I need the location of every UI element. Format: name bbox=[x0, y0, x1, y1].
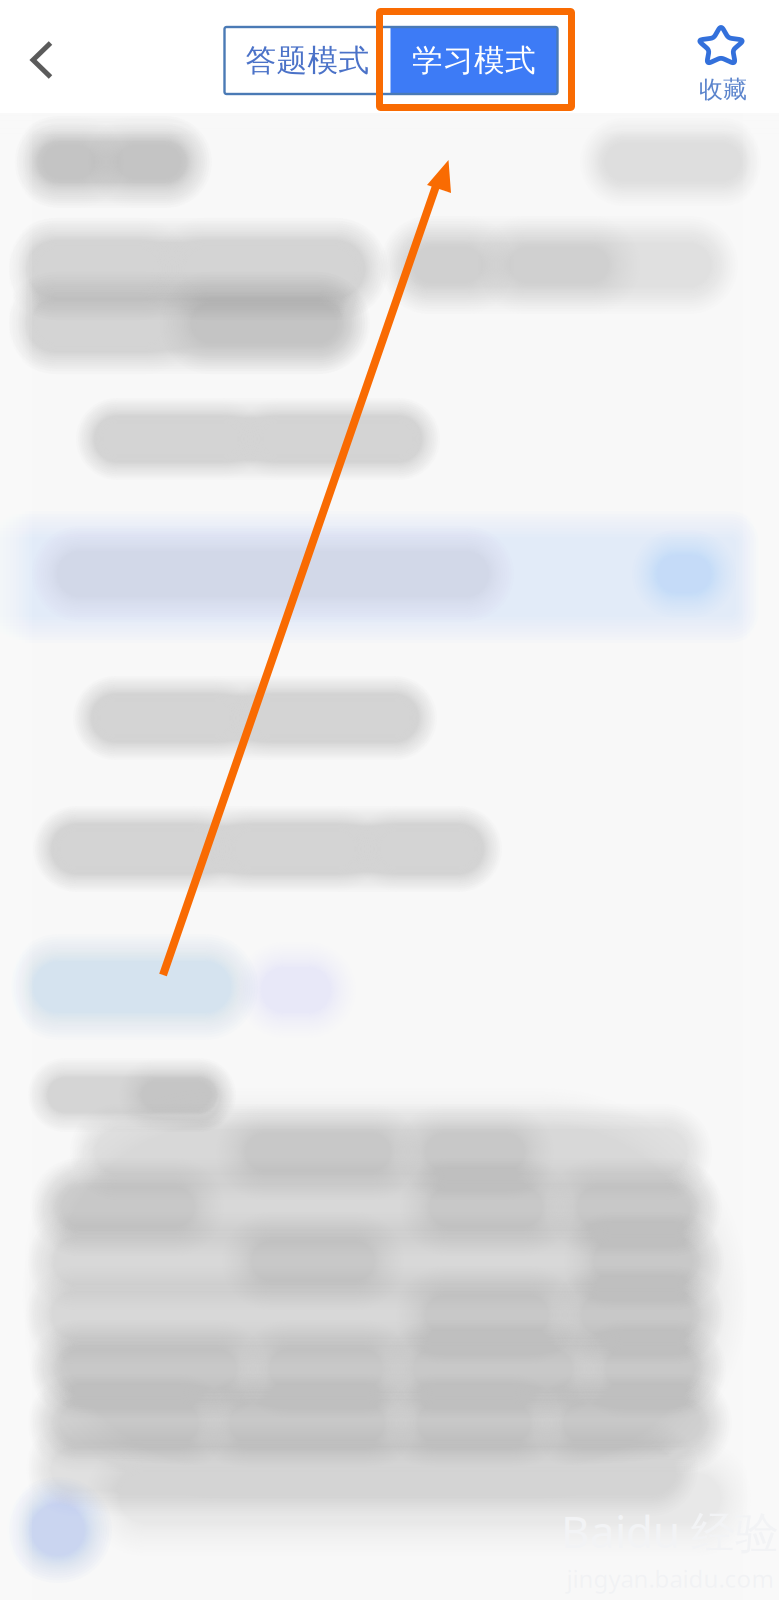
staticText: Baidu 经验 bbox=[561, 1502, 779, 1560]
button[interactable]: 收藏 bbox=[675, 15, 771, 111]
button[interactable]: 学习模式 bbox=[390, 27, 557, 94]
staticText: 收藏 bbox=[699, 75, 747, 104]
button[interactable]: 答题模式 bbox=[224, 27, 390, 94]
staticText: 学习模式 bbox=[412, 42, 536, 79]
button[interactable]: Back bbox=[7, 13, 81, 109]
staticText: 答题模式 bbox=[245, 42, 369, 79]
